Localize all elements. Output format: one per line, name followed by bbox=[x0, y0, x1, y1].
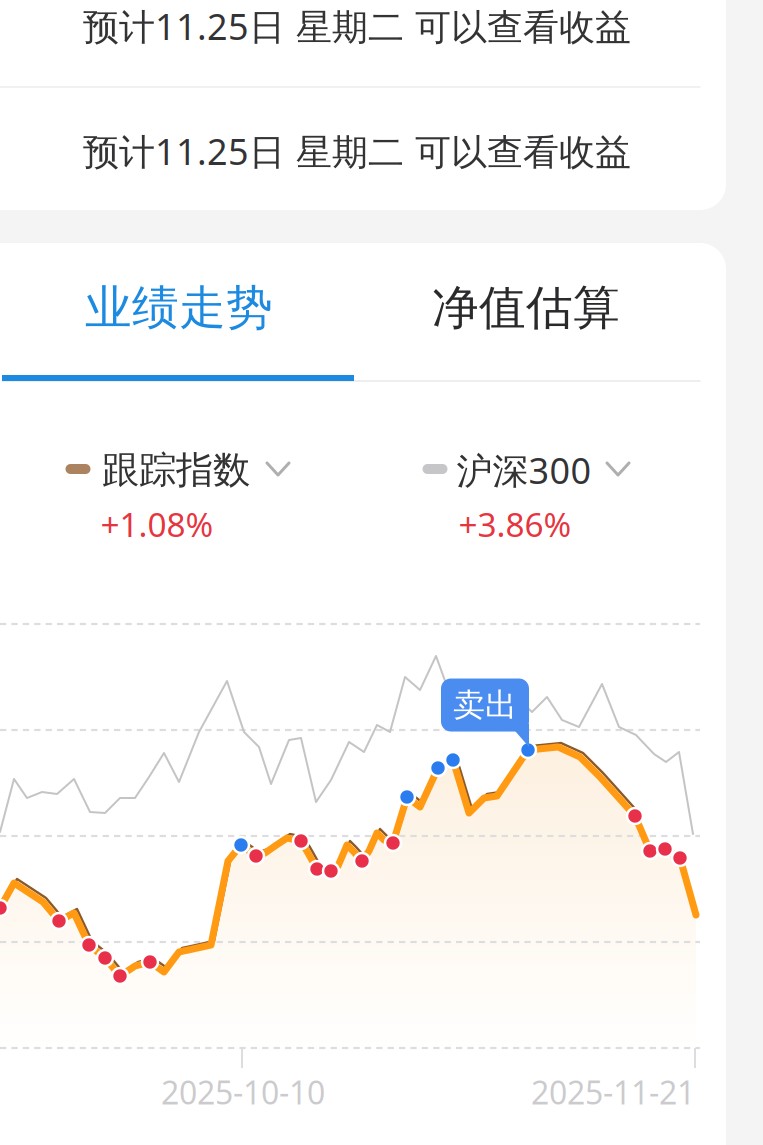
staticText: +1.08% bbox=[100, 502, 213, 546]
button[interactable]: 预计11.25日 星期二 可以查看收益 bbox=[7, 0, 707, 70]
staticText: 业绩走势 bbox=[85, 279, 273, 337]
staticText: 2025-11-21 bbox=[531, 1071, 695, 1113]
button[interactable]: 净值估算 bbox=[352, 253, 700, 363]
button[interactable]: 沪深300 bbox=[360, 425, 660, 513]
button[interactable]: 预计11.25日 星期二 可以查看收益 bbox=[7, 107, 707, 195]
button[interactable]: 业绩走势 bbox=[3, 253, 355, 363]
staticText: 预计11.25日 星期二 可以查看收益 bbox=[83, 127, 631, 175]
staticText: 2025-10-10 bbox=[161, 1071, 325, 1113]
button[interactable]: 跟踪指数 bbox=[0, 425, 320, 513]
staticText: 跟踪指数 bbox=[102, 447, 250, 493]
staticText: 净值估算 bbox=[432, 279, 620, 337]
staticText: +3.86% bbox=[458, 502, 571, 546]
staticText: 卖出 bbox=[453, 685, 517, 725]
staticText: 预计11.25日 星期二 可以查看收益 bbox=[83, 2, 631, 50]
staticText: 沪深300 bbox=[456, 446, 591, 494]
